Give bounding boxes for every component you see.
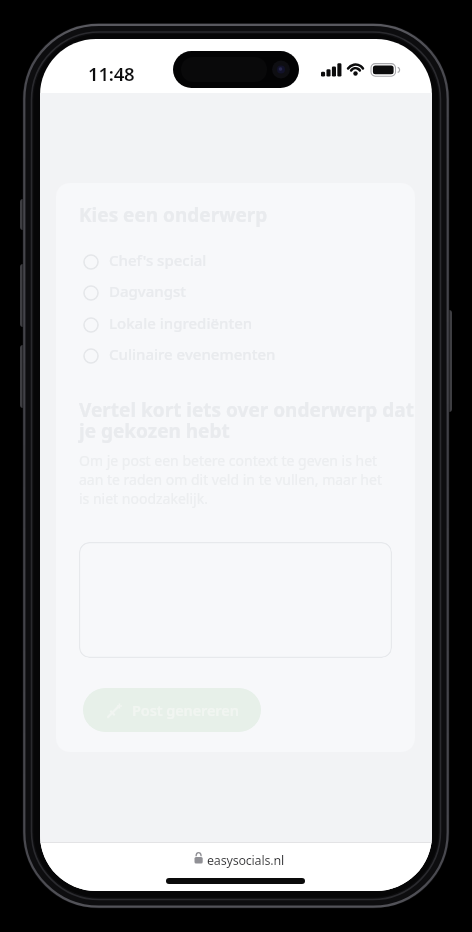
staticText: Om je post een betere context te geven i… xyxy=(79,451,382,508)
button[interactable]: Post genereren xyxy=(83,688,261,732)
staticText: Vertel kort iets over onderwerp dat je g… xyxy=(79,397,414,444)
staticText: Kies een onderwerp xyxy=(79,202,268,228)
staticText: Dagvangst xyxy=(109,281,187,301)
button[interactable]: Dagvangst xyxy=(83,281,187,301)
staticText: Lokale ingrediënten xyxy=(109,313,253,333)
button[interactable]: Chef's special xyxy=(83,250,207,270)
staticText: Culinaire evenementen xyxy=(109,344,276,364)
button[interactable]: Culinaire evenementen xyxy=(83,344,276,364)
staticText: Post genereren xyxy=(132,700,239,720)
staticText: 11:48 xyxy=(88,61,135,86)
button[interactable]: easysocials.nl xyxy=(207,852,284,869)
button[interactable]: Lokale ingrediënten xyxy=(83,313,253,333)
staticText: Chef's special xyxy=(109,250,207,270)
